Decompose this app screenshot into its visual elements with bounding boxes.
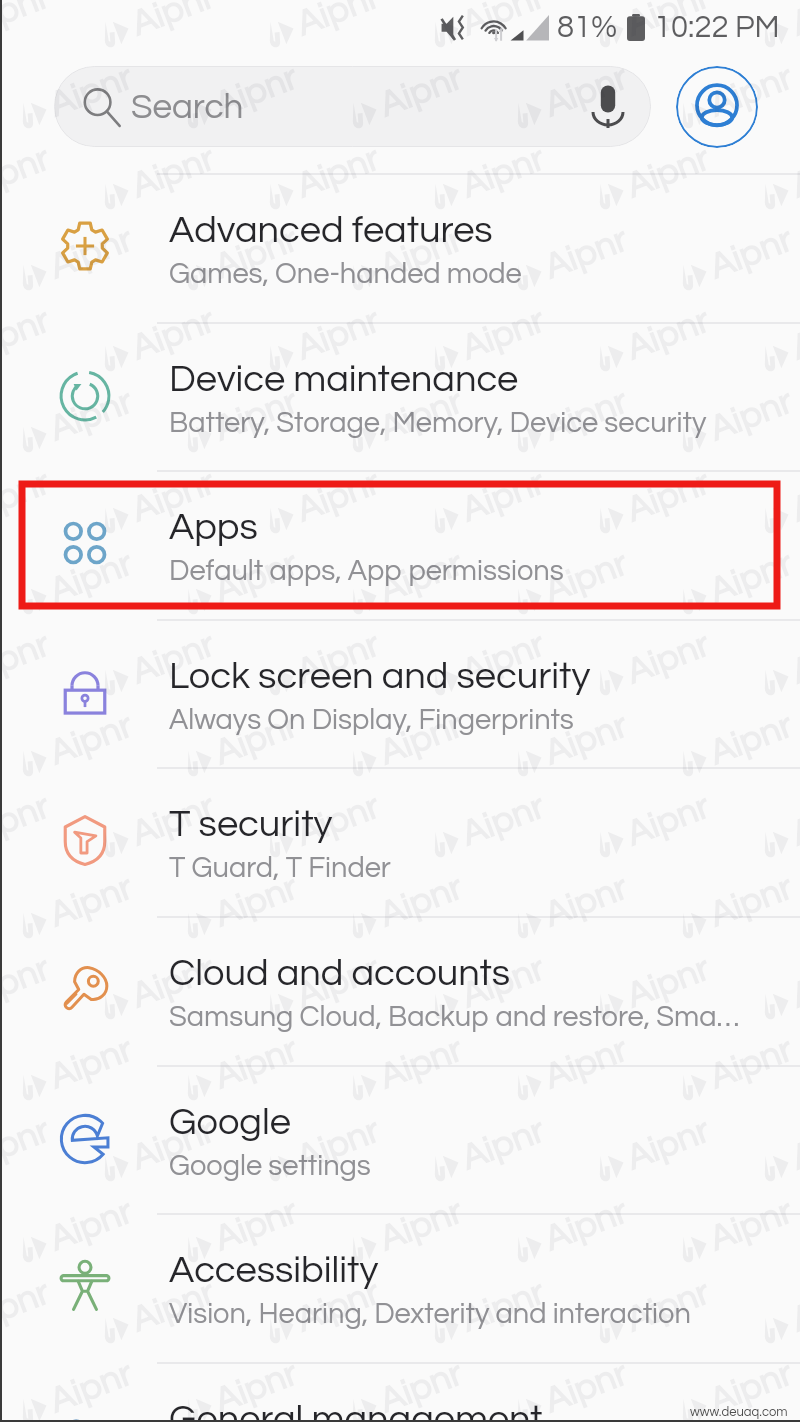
staticText: Aipnr xyxy=(126,464,219,529)
staticText: Aipnr xyxy=(209,59,302,124)
staticText: Aipnr xyxy=(539,59,632,124)
staticText: Aipnr xyxy=(786,1274,800,1339)
staticText: Aipnr xyxy=(0,464,54,529)
staticText: Aipnr xyxy=(0,302,54,367)
staticText: Aipnr xyxy=(44,869,137,934)
staticText: Aipnr xyxy=(291,464,384,529)
staticText: Aipnr xyxy=(0,1112,54,1177)
staticText: Aipnr xyxy=(786,626,800,691)
staticText: Aipnr xyxy=(44,1031,137,1096)
button[interactable]: Search xyxy=(54,66,651,147)
staticText: Aipnr xyxy=(704,59,797,124)
button[interactable]: Advanced features xyxy=(0,173,800,322)
staticText: Aipnr xyxy=(44,1193,137,1258)
staticText: Aipnr xyxy=(291,140,384,205)
staticText: Aipnr xyxy=(704,1355,797,1420)
staticText: Aipnr xyxy=(539,545,632,610)
staticText: Aipnr xyxy=(786,464,800,529)
staticText: Aipnr xyxy=(704,869,797,934)
staticText: Aipnr xyxy=(621,464,714,529)
staticText: Accessibility xyxy=(169,1251,379,1290)
button[interactable]: Account xyxy=(676,66,758,148)
staticText: Vision, Hearing, Dexterity and interacti… xyxy=(169,1299,691,1329)
button[interactable]: Accessibility xyxy=(0,1213,800,1362)
staticText: Aipnr xyxy=(291,302,384,367)
staticText: Always On Display, Fingerprints xyxy=(169,705,574,735)
staticText: Aipnr xyxy=(374,383,467,448)
button[interactable]: T security xyxy=(0,767,800,916)
button[interactable]: Device maintenance xyxy=(0,322,800,471)
button[interactable]: Lock screen and security xyxy=(0,619,800,768)
staticText: Aipnr xyxy=(44,59,137,124)
staticText: www.deuaq.com xyxy=(690,1405,788,1418)
staticText: Aipnr xyxy=(704,1031,797,1096)
staticText: Aipnr xyxy=(209,1355,302,1420)
staticText: Aipnr xyxy=(0,950,54,1015)
staticText: Aipnr xyxy=(209,1031,302,1096)
staticText: Aipnr xyxy=(291,626,384,691)
button[interactable]: Voice search xyxy=(593,85,623,128)
staticText: Apps xyxy=(169,508,258,547)
staticText: Search xyxy=(131,89,244,125)
staticText: Aipnr xyxy=(291,950,384,1015)
staticText: Aipnr xyxy=(704,545,797,610)
staticText: Aipnr xyxy=(621,302,714,367)
staticText: Cloud and accounts xyxy=(169,954,511,993)
staticText: Aipnr xyxy=(456,1112,549,1177)
staticText: Aipnr xyxy=(374,707,467,772)
staticText: Aipnr xyxy=(539,1031,632,1096)
staticText: Aipnr xyxy=(456,626,549,691)
staticText: Aipnr xyxy=(291,1274,384,1339)
staticText: Aipnr xyxy=(374,1193,467,1258)
staticText: Aipnr xyxy=(456,140,549,205)
staticText: Aipnr xyxy=(0,626,54,691)
staticText: Aipnr xyxy=(621,140,714,205)
staticText: Aipnr xyxy=(0,1274,54,1339)
staticText: Aipnr xyxy=(786,788,800,853)
staticText: Aipnr xyxy=(126,302,219,367)
staticText: Games, One-handed mode xyxy=(169,259,522,289)
staticText: Aipnr xyxy=(0,140,54,205)
staticText: Aipnr xyxy=(456,464,549,529)
staticText: Aipnr xyxy=(44,1355,137,1420)
staticText: Aipnr xyxy=(539,383,632,448)
staticText: T security xyxy=(169,805,333,844)
staticText: Aipnr xyxy=(209,869,302,934)
staticText: Default apps, App permissions xyxy=(169,556,564,586)
button[interactable]: Cloud and accounts xyxy=(0,916,800,1065)
staticText: Aipnr xyxy=(374,221,467,286)
button[interactable]: Apps xyxy=(0,470,800,619)
staticText: Aipnr xyxy=(44,707,137,772)
staticText: Aipnr xyxy=(44,545,137,610)
staticText: Aipnr xyxy=(786,0,800,43)
staticText: 81% xyxy=(557,12,618,44)
staticText: Aipnr xyxy=(786,950,800,1015)
staticText: Aipnr xyxy=(621,950,714,1015)
staticText: Aipnr xyxy=(704,383,797,448)
staticText: Aipnr xyxy=(539,869,632,934)
staticText: Aipnr xyxy=(209,1193,302,1258)
staticText: Aipnr xyxy=(126,0,219,43)
staticText: Aipnr xyxy=(539,1355,632,1420)
staticText: Aipnr xyxy=(291,0,384,43)
staticText: Aipnr xyxy=(539,221,632,286)
staticText: Aipnr xyxy=(704,707,797,772)
staticText: T Guard, T Finder xyxy=(169,853,391,883)
button[interactable]: Google xyxy=(0,1065,800,1214)
staticText: Samsung Cloud, Backup and restore, Smart… xyxy=(169,1002,743,1032)
staticText: Aipnr xyxy=(621,626,714,691)
staticText: General management xyxy=(169,1400,543,1422)
staticText: Aipnr xyxy=(0,0,54,43)
staticText: Aipnr xyxy=(786,302,800,367)
staticText: Aipnr xyxy=(786,1112,800,1177)
staticText: Aipnr xyxy=(621,788,714,853)
staticText: Google xyxy=(169,1103,291,1142)
staticText: Aipnr xyxy=(209,383,302,448)
staticText: Aipnr xyxy=(291,1112,384,1177)
staticText: Aipnr xyxy=(126,626,219,691)
staticText: Aipnr xyxy=(621,1112,714,1177)
staticText: Aipnr xyxy=(0,788,54,853)
button[interactable]: General management xyxy=(0,1362,800,1422)
staticText: Aipnr xyxy=(539,707,632,772)
staticText: Aipnr xyxy=(126,950,219,1015)
